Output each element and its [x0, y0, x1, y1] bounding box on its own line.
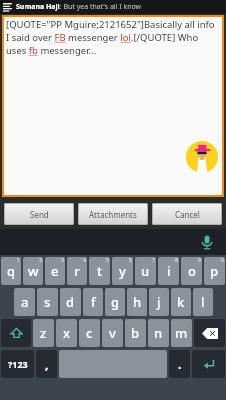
staticText: i	[167, 262, 171, 280]
staticText: z	[40, 324, 47, 342]
staticText: m	[175, 324, 188, 342]
button[interactable]: y	[112, 257, 133, 285]
button[interactable]: q	[1, 257, 21, 285]
staticText: k	[177, 293, 185, 311]
button[interactable]: p	[204, 257, 225, 285]
button[interactable]: [QUOTE="PP Mguire;2121652"]Basically all…	[2, 15, 224, 197]
staticText: Attachments	[89, 209, 137, 220]
staticText: 0	[221, 257, 224, 264]
staticText: l	[201, 293, 205, 311]
staticText: s	[44, 293, 51, 311]
staticText: b	[131, 324, 140, 342]
staticText: r	[74, 262, 80, 280]
button[interactable]: n	[148, 319, 169, 347]
staticText: f	[91, 293, 96, 311]
staticText: e	[51, 262, 59, 280]
button[interactable]: x	[56, 319, 77, 347]
button[interactable]: Backspace	[194, 319, 225, 347]
button[interactable]: .	[169, 350, 190, 378]
button[interactable]: j	[149, 288, 169, 316]
button[interactable]: f	[83, 288, 103, 316]
button[interactable]: i	[158, 257, 179, 285]
staticText: v	[109, 324, 116, 342]
staticText: Send	[30, 209, 49, 220]
staticText: [QUOTE="PP Mguire;2121652"]Basically all…	[6, 18, 220, 57]
staticText: 7	[152, 257, 155, 264]
button[interactable]: t	[89, 257, 110, 285]
button[interactable]: o	[181, 257, 202, 285]
button[interactable]: Cancel	[152, 203, 222, 225]
staticText: ,	[45, 356, 49, 372]
staticText: o	[188, 262, 196, 280]
staticText: g	[111, 293, 120, 311]
staticText: Sumana Haji: But yea that's all I know	[16, 2, 142, 12]
staticText: u	[141, 262, 150, 280]
button[interactable]: Attachments	[78, 203, 148, 225]
button[interactable]: Shift	[1, 319, 31, 347]
button[interactable]: w	[23, 257, 43, 285]
staticText: .	[178, 356, 182, 372]
button[interactable]: Enter	[192, 350, 225, 378]
button[interactable]: e	[45, 257, 65, 285]
staticText: t	[97, 262, 102, 280]
staticText: 6	[129, 257, 132, 264]
staticText: j	[157, 293, 161, 311]
button[interactable]: b	[125, 319, 146, 347]
staticText: 5	[106, 257, 109, 264]
staticText: 2	[39, 257, 42, 264]
button[interactable]: m	[171, 319, 192, 347]
button[interactable]: Sumana Haji: But yea that's all I know	[0, 0, 226, 14]
button[interactable]: ,	[36, 350, 57, 378]
button[interactable]: Send	[4, 203, 74, 225]
staticText: n	[154, 324, 163, 342]
button[interactable]: ?123	[1, 350, 34, 378]
button[interactable]: h	[127, 288, 147, 316]
staticText: 9	[198, 257, 201, 264]
staticText: q	[7, 262, 16, 280]
staticText: 3	[61, 257, 64, 264]
staticText: d	[66, 293, 75, 311]
staticText: p	[210, 262, 219, 280]
button[interactable]: s	[37, 288, 58, 316]
staticText: x	[63, 324, 71, 342]
button[interactable]: Voice input	[198, 233, 216, 251]
button[interactable]: z	[33, 319, 54, 347]
staticText: w	[28, 262, 39, 280]
staticText: 4	[83, 257, 86, 264]
staticText: 1	[17, 257, 20, 264]
button[interactable]: u	[135, 257, 156, 285]
button[interactable]: a	[14, 288, 35, 316]
staticText: y	[119, 262, 126, 280]
button[interactable]: c	[79, 319, 100, 347]
button[interactable]: r	[67, 257, 87, 285]
staticText: 8	[175, 257, 178, 264]
staticText: ?123	[8, 358, 28, 370]
button[interactable]: d	[60, 288, 81, 316]
staticText: Cancel	[175, 209, 200, 220]
staticText: c	[86, 324, 93, 342]
button[interactable]: l	[193, 288, 213, 316]
staticText: h	[133, 293, 142, 311]
button[interactable]: v	[102, 319, 123, 347]
staticText: a	[21, 293, 29, 311]
button[interactable]: g	[105, 288, 125, 316]
button[interactable]: k	[171, 288, 191, 316]
